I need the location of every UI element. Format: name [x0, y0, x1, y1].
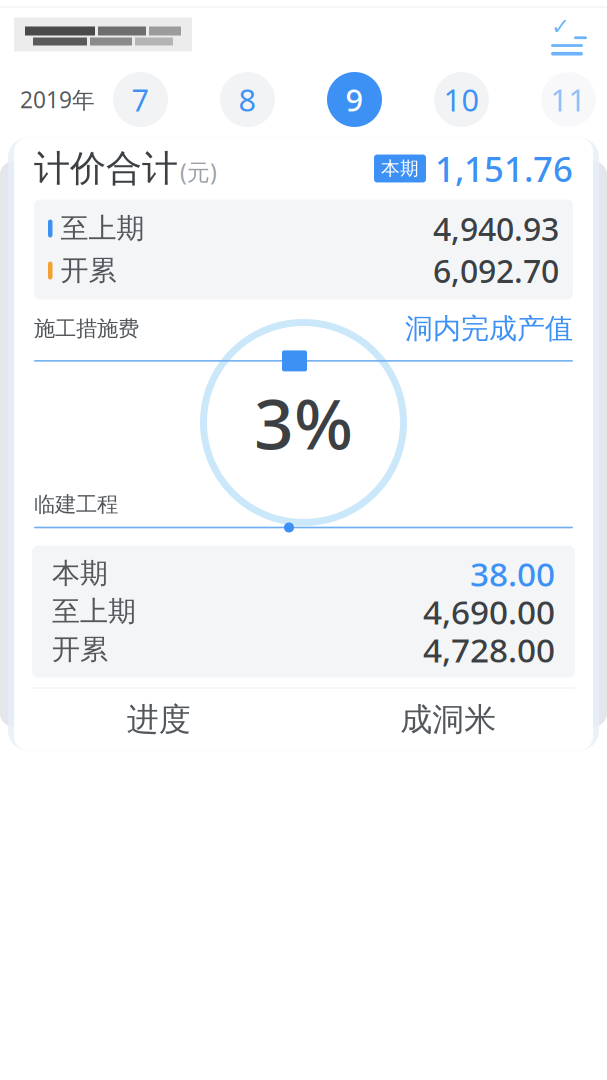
staticText: 2019年: [20, 84, 95, 114]
button[interactable]: 洞内完成产值: [405, 311, 573, 346]
staticText: 4,728.00: [423, 627, 555, 672]
staticText: 至上期: [60, 211, 144, 246]
button[interactable]: 9: [327, 72, 382, 127]
button[interactable]: 8: [220, 72, 275, 127]
button[interactable]: 10: [434, 72, 489, 127]
staticText: 本期: [381, 157, 419, 180]
staticText: 洞内完成产值: [405, 311, 573, 346]
button[interactable]: 7: [113, 72, 168, 127]
staticText: 4,690.00: [423, 589, 555, 634]
staticText: 成洞米: [400, 700, 496, 739]
staticText: 3%: [254, 376, 353, 469]
staticText: 9: [345, 79, 363, 120]
staticText: 本期: [52, 556, 108, 591]
staticText: 4,940.93: [433, 207, 559, 250]
staticText: 至上期: [52, 594, 136, 629]
staticText: 1,151.76: [435, 145, 573, 191]
staticText: 施工措施费: [34, 316, 139, 342]
button[interactable]: 选择: [537, 12, 601, 56]
staticText: 8: [238, 79, 256, 120]
staticText: 6,092.70: [433, 249, 559, 292]
staticText: ✓: [551, 13, 570, 39]
staticText: 进度: [127, 700, 191, 739]
staticText: 开累: [60, 253, 116, 288]
staticText: 38.00: [470, 551, 555, 596]
staticText: 10: [443, 79, 479, 120]
button[interactable]: 成洞米: [303, 688, 593, 750]
staticText: 开累: [52, 632, 108, 667]
staticText: 计价合计: [34, 146, 178, 191]
button[interactable]: 进度: [14, 688, 303, 750]
staticText: 11: [550, 79, 586, 120]
staticText: 7: [131, 79, 149, 120]
staticText: 临建工程: [34, 491, 118, 517]
staticText: (元): [180, 157, 217, 187]
button[interactable]: 11: [541, 72, 596, 127]
